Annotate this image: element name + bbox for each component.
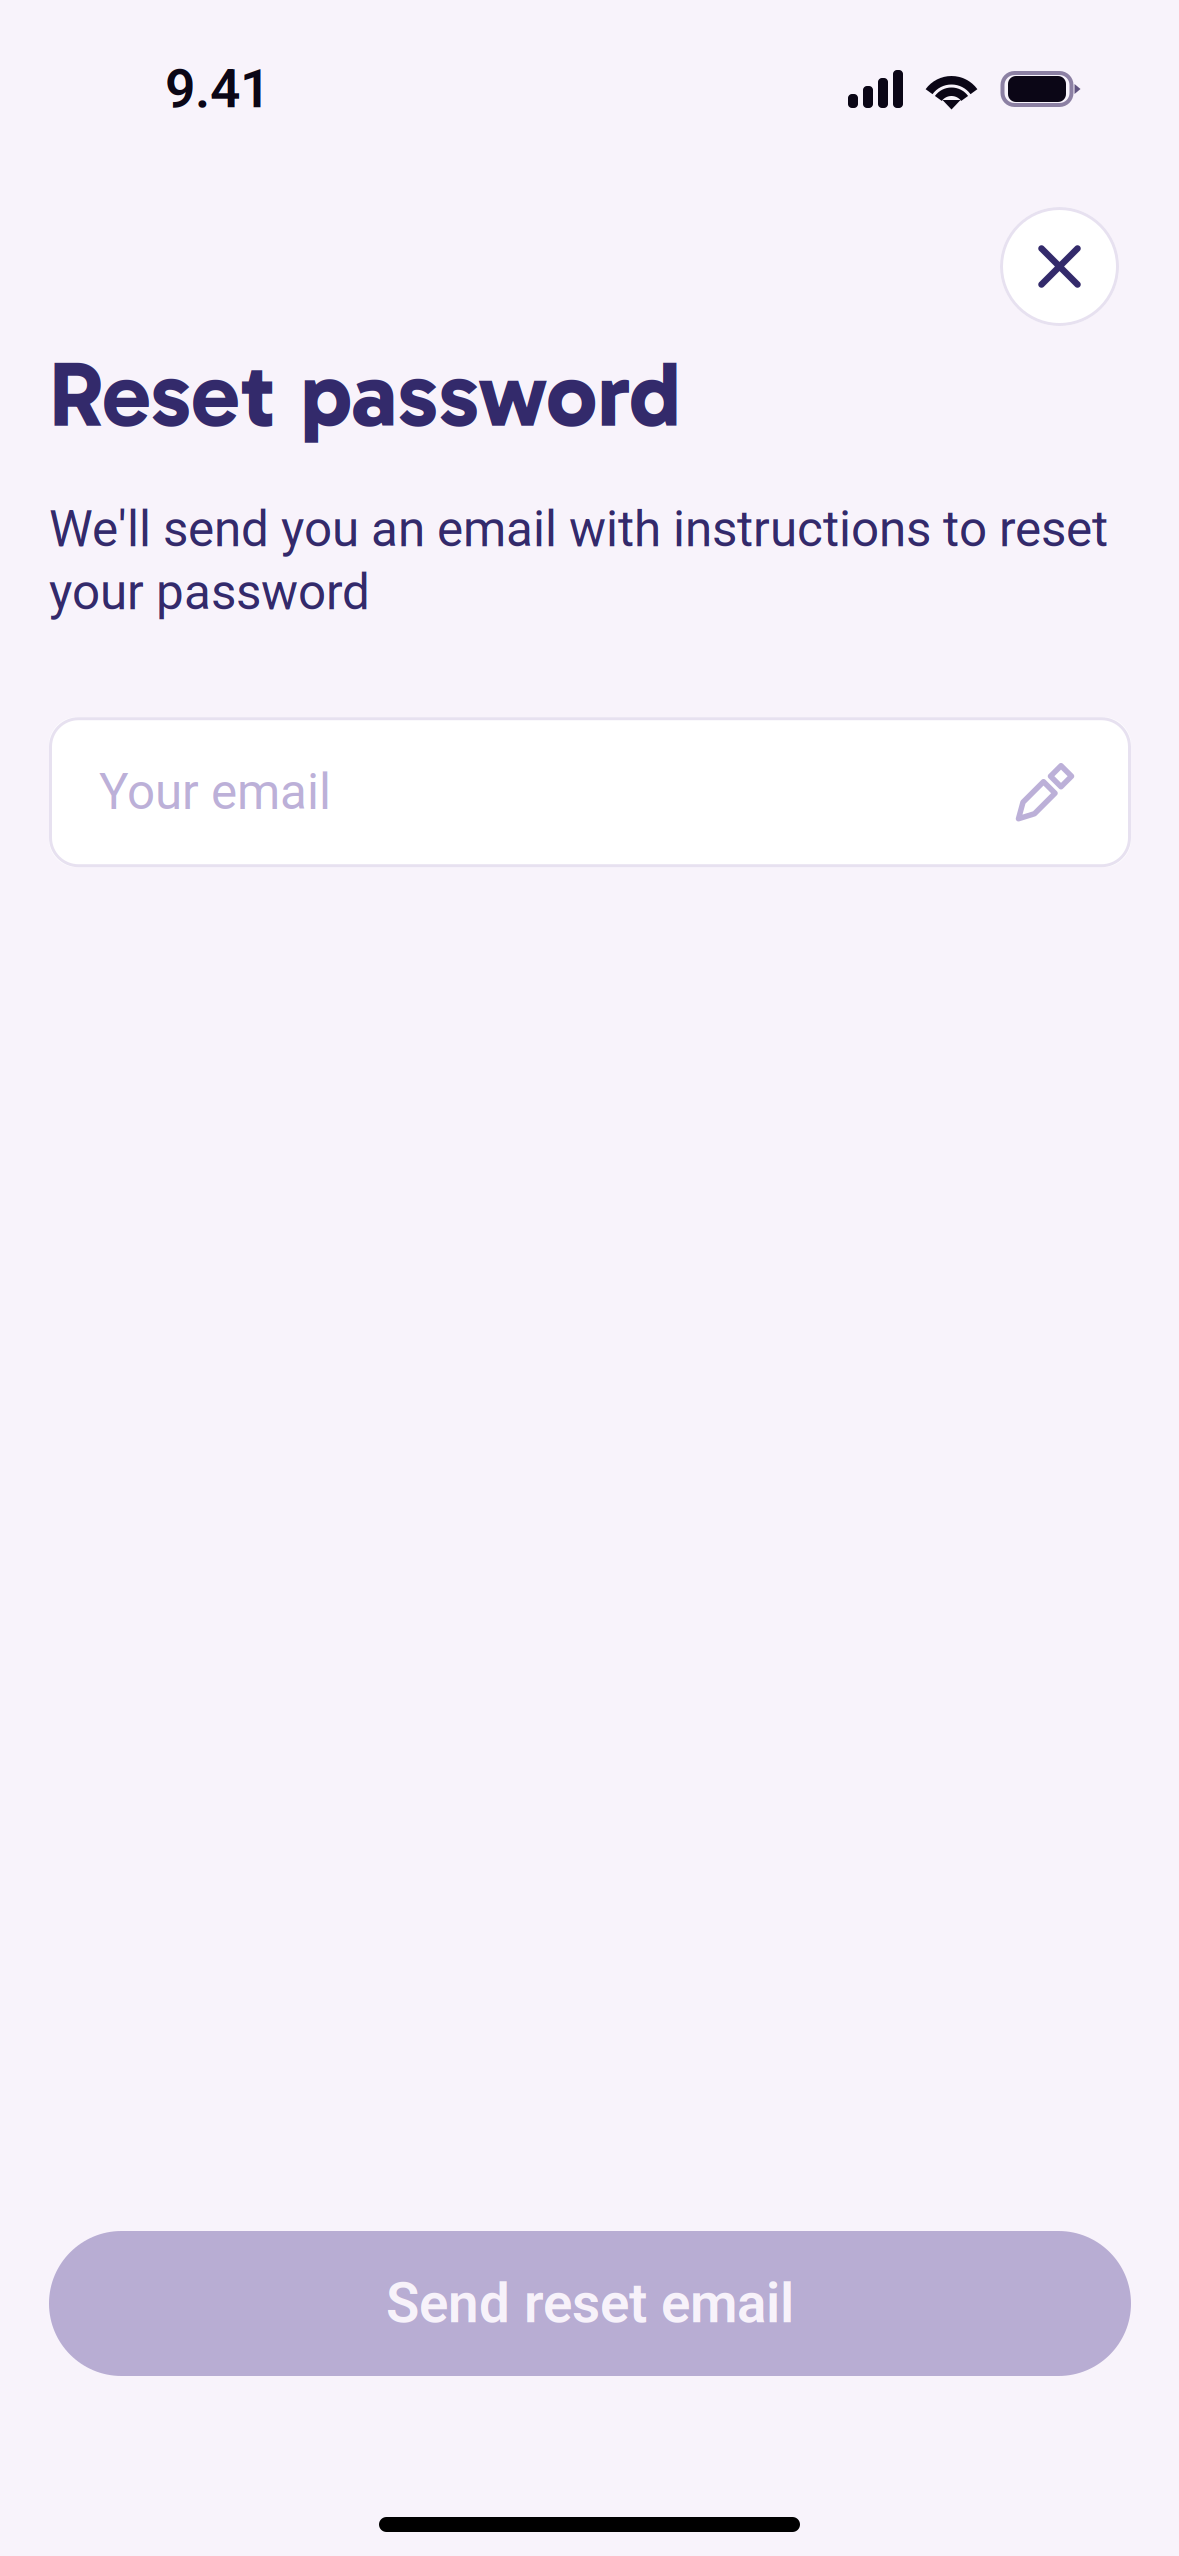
staticText: Your email	[99, 763, 331, 821]
button[interactable]: Close	[1000, 207, 1119, 326]
staticText: Send reset email	[386, 2271, 794, 2336]
staticText: 9.41	[165, 58, 270, 120]
button[interactable]: Send reset email	[49, 2231, 1131, 2376]
staticText: We'll send you an email with instruction…	[49, 501, 1108, 621]
staticText: Reset password	[49, 340, 681, 450]
button[interactable]: Your email	[49, 717, 1131, 867]
